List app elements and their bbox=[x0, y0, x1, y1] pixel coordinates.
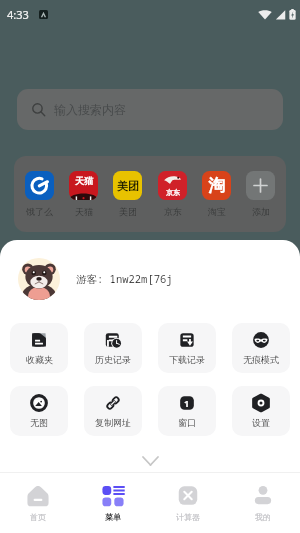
button[interactable]: 添加 bbox=[246, 171, 275, 217]
button[interactable]: 设置 bbox=[232, 386, 290, 436]
button[interactable]: 饿了么 bbox=[25, 171, 54, 217]
staticText: 淘 bbox=[208, 175, 225, 196]
staticText: 游客: 1nw22m[76j bbox=[76, 272, 173, 286]
button[interactable]: 无图 bbox=[10, 386, 68, 436]
staticText: 京东 bbox=[164, 206, 182, 217]
staticText: 淘宝 bbox=[208, 206, 226, 217]
button[interactable]: 无痕模式 bbox=[232, 323, 290, 373]
staticText: 首页 bbox=[30, 512, 46, 522]
staticText: 下载记录 bbox=[169, 354, 205, 365]
staticText: 美团 bbox=[119, 206, 137, 217]
staticText: 1 bbox=[184, 397, 190, 409]
staticText: 无图 bbox=[30, 417, 48, 428]
button[interactable]: 游客: 1nw22m[76j bbox=[0, 258, 300, 300]
button[interactable]: 菜单 bbox=[75, 473, 150, 533]
button[interactable]: 1 bbox=[158, 386, 216, 436]
button[interactable]: 计算器 bbox=[150, 473, 225, 533]
staticText: 4:33 bbox=[7, 7, 29, 22]
staticText: 天猫 bbox=[75, 175, 93, 186]
button[interactable]: 淘 bbox=[202, 171, 231, 217]
staticText: 美团 bbox=[117, 179, 139, 193]
button[interactable]: 美团 bbox=[113, 171, 142, 217]
staticText: 我的 bbox=[255, 512, 271, 522]
staticText: 天猫 bbox=[75, 206, 93, 217]
staticText: 无痕模式 bbox=[243, 354, 279, 365]
button[interactable]: 天猫 bbox=[69, 171, 98, 217]
staticText: 复制网址 bbox=[95, 417, 131, 428]
button[interactable]: 京东 bbox=[158, 171, 187, 217]
staticText: 计算器 bbox=[176, 512, 200, 522]
staticText: 输入搜索内容 bbox=[54, 102, 126, 117]
staticText: 收藏夹 bbox=[26, 354, 53, 365]
staticText: 历史记录 bbox=[95, 354, 131, 365]
staticText: 京东 bbox=[166, 188, 180, 197]
staticText: 设置 bbox=[252, 417, 270, 428]
button[interactable]: 历史记录 bbox=[84, 323, 142, 373]
button[interactable]: 下载记录 bbox=[158, 323, 216, 373]
button[interactable]: 复制网址 bbox=[84, 386, 142, 436]
button[interactable]: 收藏夹 bbox=[10, 323, 68, 373]
staticText: 窗口 bbox=[178, 417, 196, 428]
button[interactable]: 我的 bbox=[225, 473, 300, 533]
button[interactable]: 首页 bbox=[0, 473, 75, 533]
button[interactable]: Collapse bbox=[0, 450, 300, 472]
button[interactable]: 输入搜索内容 bbox=[17, 89, 283, 130]
staticText: 饿了么 bbox=[26, 206, 53, 217]
staticText: 菜单 bbox=[105, 512, 121, 522]
staticText: 添加 bbox=[252, 206, 270, 217]
